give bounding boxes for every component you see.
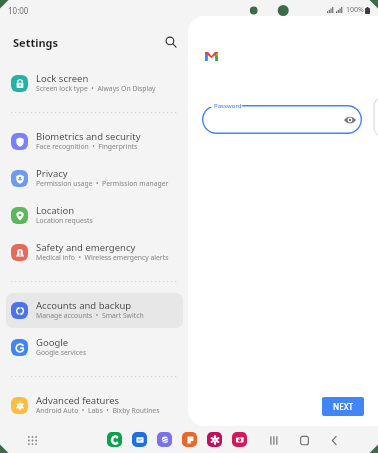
button[interactable]: Safety and emergency — [6, 235, 183, 270]
button[interactable]: Notes — [182, 432, 197, 447]
staticText: Medical info • Wireless emergency alerts — [36, 253, 169, 262]
staticText: Privacy — [36, 167, 68, 180]
button[interactable]: NEXT — [322, 397, 364, 416]
button[interactable]: Accounts and backup — [6, 293, 183, 328]
staticText: Google services — [36, 348, 87, 357]
staticText: Manage accounts • Smart Switch — [36, 311, 144, 320]
staticText: Advanced features — [36, 394, 120, 407]
button[interactable]: Messages — [132, 432, 147, 447]
staticText: Location requests — [36, 216, 93, 225]
staticText: Safety and emergency — [36, 241, 136, 254]
button[interactable]: Show password — [342, 112, 357, 127]
staticText: Google — [36, 336, 69, 349]
staticText: Settings — [13, 35, 59, 50]
staticText: 100% — [346, 5, 364, 15]
button[interactable]: Apps — [24, 432, 40, 448]
button[interactable]: Google — [6, 330, 183, 365]
staticText: Face recognition • Fingerprints — [36, 142, 138, 151]
staticText: NEXT — [333, 401, 354, 412]
staticText: Android Auto • Labs • Bixby Routines — [36, 406, 160, 415]
staticText: Lock screen — [36, 72, 89, 85]
button[interactable]: Advanced features — [6, 388, 183, 423]
button[interactable]: Biometrics and security — [6, 124, 183, 159]
staticText: Location — [36, 204, 75, 217]
button[interactable]: Camera — [232, 432, 247, 447]
staticText: Permission usage • Permission manager — [36, 179, 169, 188]
button[interactable]: Lock screen — [6, 66, 183, 101]
staticText: Password — [214, 101, 242, 109]
staticText: Screen lock type • Always On Display — [36, 84, 156, 93]
button[interactable]: Back — [326, 432, 342, 448]
button[interactable]: Internet — [157, 432, 172, 447]
button[interactable]: Gallery — [207, 432, 222, 447]
button[interactable]: Home — [296, 432, 312, 448]
button[interactable]: Phone — [107, 432, 122, 447]
button[interactable]: Privacy — [6, 161, 183, 196]
staticText: Accounts and backup — [36, 299, 132, 312]
button[interactable]: Search — [158, 29, 184, 55]
button[interactable]: Recent apps — [266, 432, 282, 448]
staticText: 10:00 — [8, 5, 29, 16]
staticText: Biometrics and security — [36, 130, 141, 143]
button[interactable]: Location — [6, 198, 183, 233]
